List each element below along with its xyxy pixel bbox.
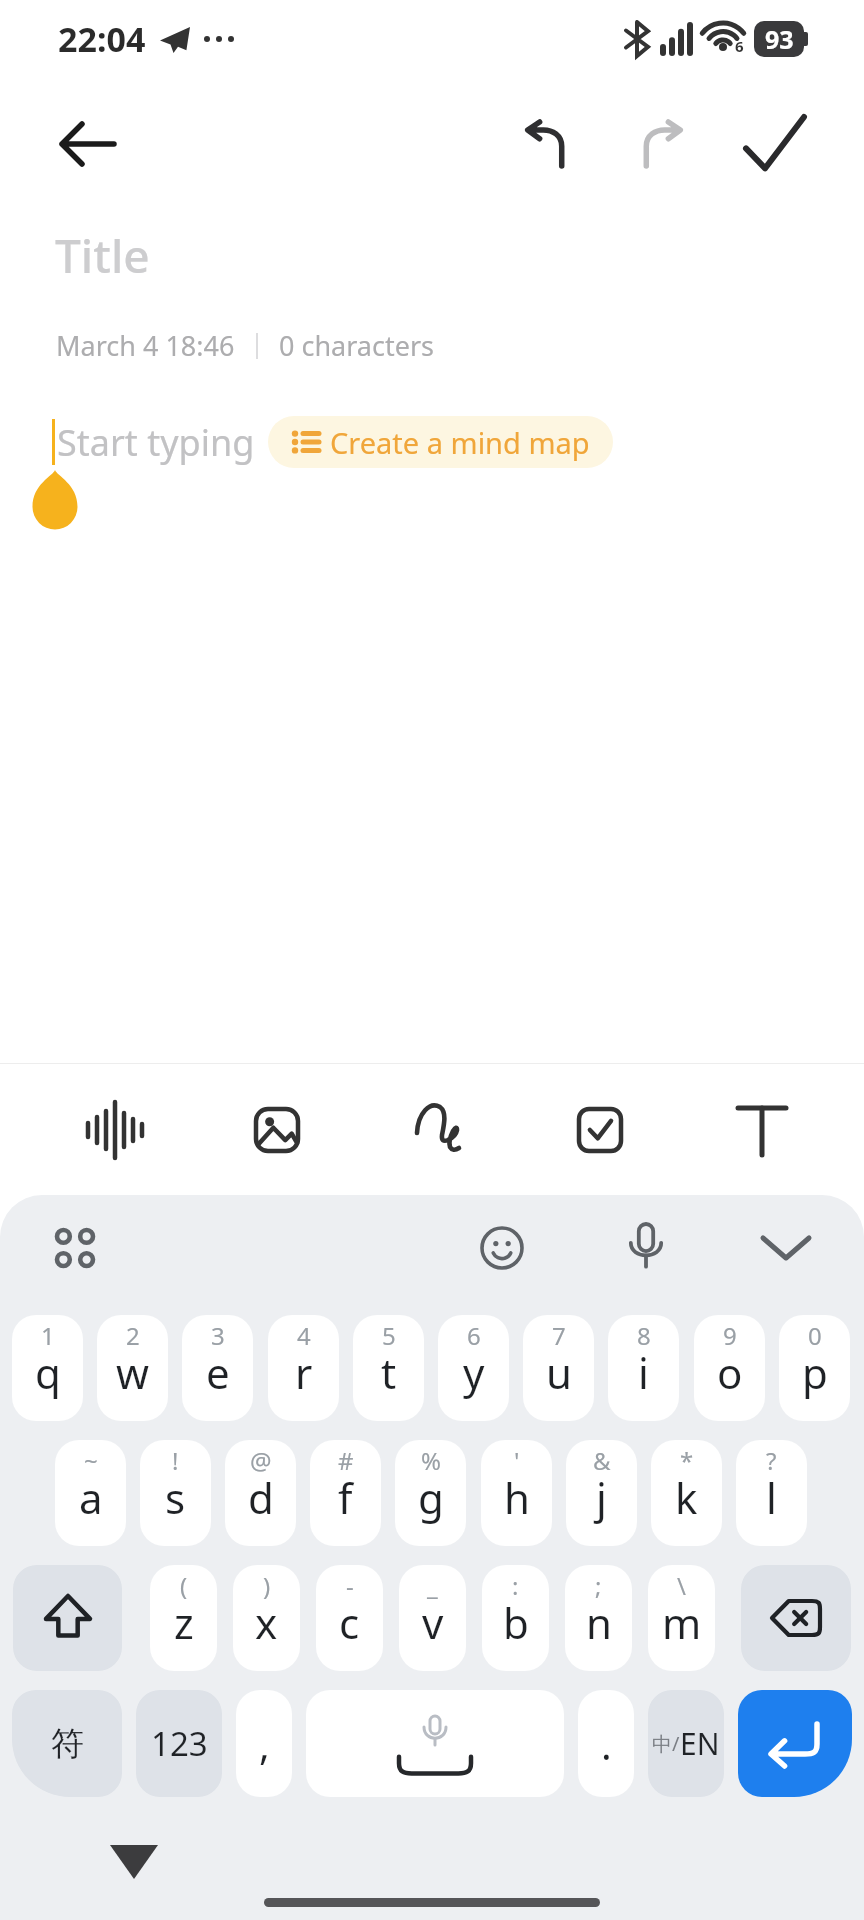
staticText: : — [512, 1569, 519, 1602]
button[interactable] — [615, 1217, 677, 1279]
staticText: s — [165, 1469, 186, 1526]
staticText: 8 — [637, 1319, 651, 1352]
button[interactable]: # — [310, 1440, 381, 1546]
button[interactable]: % — [395, 1440, 466, 1546]
staticText: w — [116, 1344, 150, 1401]
staticText: ' — [514, 1444, 520, 1477]
button[interactable]: ; — [565, 1565, 632, 1671]
button[interactable]: 3 — [182, 1315, 253, 1421]
staticText: ; — [595, 1569, 602, 1602]
button[interactable]: 0 — [779, 1315, 850, 1421]
staticText: & — [593, 1444, 611, 1477]
button[interactable]: ? — [736, 1440, 807, 1546]
staticText: 4 — [297, 1319, 311, 1352]
button[interactable]: 中/ — [648, 1690, 724, 1797]
staticText: i — [638, 1344, 649, 1401]
button[interactable]: & — [566, 1440, 637, 1546]
button[interactable] — [743, 112, 807, 176]
button[interactable] — [741, 1565, 851, 1671]
staticText: 7 — [552, 1319, 566, 1352]
button[interactable]: * — [651, 1440, 722, 1546]
staticText: k — [675, 1469, 698, 1526]
staticText: \ — [677, 1569, 686, 1602]
staticText: u — [546, 1344, 572, 1401]
staticText: e — [206, 1344, 230, 1401]
button[interactable] — [722, 1090, 802, 1170]
button[interactable] — [471, 1217, 533, 1279]
staticText: g — [418, 1469, 444, 1526]
staticText: ( — [180, 1569, 188, 1602]
button[interactable]: 8 — [608, 1315, 679, 1421]
staticText: Title — [55, 224, 150, 287]
staticText: h — [504, 1469, 530, 1526]
button[interactable]: 符 — [12, 1690, 122, 1797]
staticText: 5 — [382, 1319, 396, 1352]
button[interactable] — [13, 1565, 122, 1671]
staticText: 中/ — [652, 1730, 680, 1757]
button[interactable]: , — [236, 1690, 292, 1797]
staticText: t — [381, 1344, 397, 1401]
staticText: z — [174, 1594, 194, 1651]
button[interactable]: _ — [399, 1565, 466, 1671]
button[interactable] — [515, 112, 579, 176]
button[interactable] — [44, 1217, 106, 1279]
button[interactable]: 123 — [136, 1690, 222, 1797]
button[interactable]: ( — [150, 1565, 217, 1671]
button[interactable]: . — [578, 1690, 634, 1797]
button[interactable] — [738, 1690, 852, 1797]
staticText: j — [596, 1469, 607, 1526]
staticText: # — [338, 1444, 354, 1477]
staticText: n — [586, 1594, 612, 1651]
button[interactable] — [560, 1090, 640, 1170]
staticText: 1 — [41, 1319, 55, 1352]
button[interactable]: Create a mind map — [268, 416, 613, 468]
button[interactable] — [399, 1090, 479, 1170]
staticText: p — [802, 1344, 828, 1401]
staticText: q — [35, 1344, 61, 1401]
button[interactable] — [306, 1690, 564, 1797]
button[interactable] — [237, 1090, 317, 1170]
button[interactable]: 6 — [438, 1315, 509, 1421]
button[interactable]: - — [316, 1565, 383, 1671]
button[interactable]: ) — [233, 1565, 300, 1671]
button[interactable]: ' — [481, 1440, 552, 1546]
staticText: * — [680, 1444, 694, 1477]
staticText: 2 — [126, 1319, 140, 1352]
button[interactable]: ! — [140, 1440, 211, 1546]
staticText: 123 — [151, 1721, 208, 1766]
button[interactable]: @ — [225, 1440, 296, 1546]
button[interactable]: \ — [648, 1565, 715, 1671]
button[interactable]: 7 — [523, 1315, 594, 1421]
staticText: March 4 18:46 — [56, 327, 235, 364]
button[interactable]: : — [482, 1565, 549, 1671]
staticText: 9 — [723, 1319, 737, 1352]
button[interactable]: ~ — [55, 1440, 126, 1546]
button[interactable]: 5 — [353, 1315, 424, 1421]
staticText: _ — [427, 1569, 438, 1602]
staticText: , — [259, 1717, 270, 1771]
staticText: 6 — [467, 1319, 481, 1352]
staticText: Create a mind map — [330, 423, 590, 462]
button[interactable] — [75, 1090, 155, 1170]
button[interactable] — [755, 1217, 817, 1279]
staticText: 3 — [211, 1319, 225, 1352]
staticText: 93 — [765, 22, 794, 56]
staticText: v — [422, 1594, 444, 1651]
button[interactable]: 2 — [97, 1315, 168, 1421]
button[interactable]: 9 — [694, 1315, 765, 1421]
button[interactable] — [629, 112, 693, 176]
staticText: l — [766, 1469, 777, 1526]
button[interactable] — [56, 112, 120, 176]
staticText: 0 characters — [279, 327, 435, 364]
button[interactable]: 4 — [268, 1315, 339, 1421]
staticText: x — [255, 1594, 278, 1651]
staticText: y — [463, 1344, 485, 1401]
staticText: b — [503, 1594, 529, 1651]
staticText: r — [295, 1344, 313, 1401]
staticText: ) — [263, 1569, 271, 1602]
staticText: EN — [680, 1723, 720, 1764]
staticText: f — [338, 1469, 353, 1526]
staticText: ~ — [84, 1444, 98, 1477]
staticText: m — [662, 1594, 702, 1651]
button[interactable]: 1 — [12, 1315, 83, 1421]
